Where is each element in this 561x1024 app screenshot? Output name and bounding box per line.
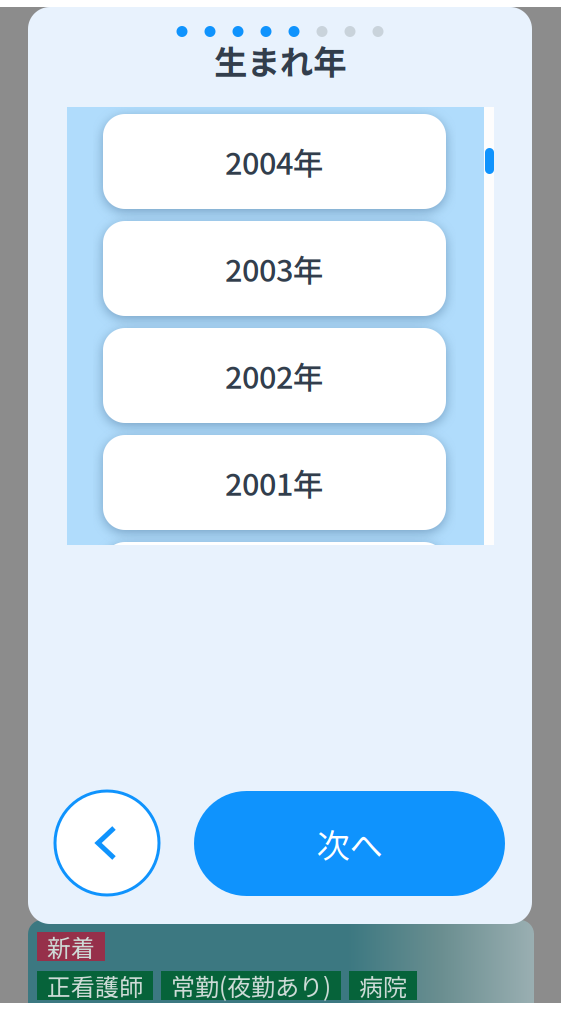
- staticText: 次へ: [316, 819, 382, 868]
- button[interactable]: 次へ: [194, 791, 505, 896]
- staticText: 常勤(夜勤あり): [171, 968, 331, 1003]
- button[interactable]: Back: [55, 791, 159, 895]
- staticText: 2004年: [225, 139, 324, 184]
- staticText: 正看護師: [47, 968, 143, 1003]
- button[interactable]: 2003年: [103, 221, 446, 316]
- button[interactable]: 2001年: [103, 435, 446, 530]
- button[interactable]: 2004年: [103, 114, 446, 209]
- staticText: 2003年: [225, 246, 324, 291]
- staticText: 2001年: [225, 460, 324, 505]
- staticText: 病院: [359, 968, 407, 1003]
- staticText: 生まれ年: [214, 36, 346, 84]
- button[interactable]: 2000年: [103, 542, 446, 637]
- staticText: 2002年: [225, 353, 324, 398]
- button[interactable]: 2002年: [103, 328, 446, 423]
- staticText: 新着: [47, 929, 95, 964]
